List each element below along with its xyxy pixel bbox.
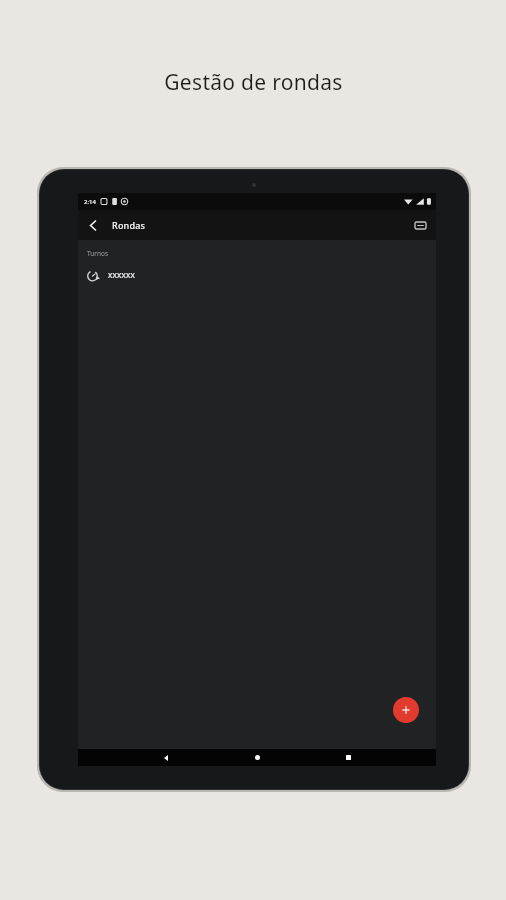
button[interactable]: Home: [244, 749, 270, 766]
button[interactable]: Add round: [393, 697, 419, 723]
staticText: 2:14: [84, 198, 96, 206]
staticText: XXXXXX: [108, 271, 135, 281]
button[interactable]: Back: [153, 749, 179, 766]
button[interactable]: XXXXXX: [78, 265, 436, 287]
button[interactable]: Menu: [410, 215, 430, 235]
button[interactable]: Recents: [335, 749, 361, 766]
staticText: Gestão de rondas: [164, 68, 343, 97]
button[interactable]: Back: [82, 214, 104, 236]
staticText: Turnos: [87, 249, 109, 258]
staticText: Rondas: [112, 219, 146, 231]
